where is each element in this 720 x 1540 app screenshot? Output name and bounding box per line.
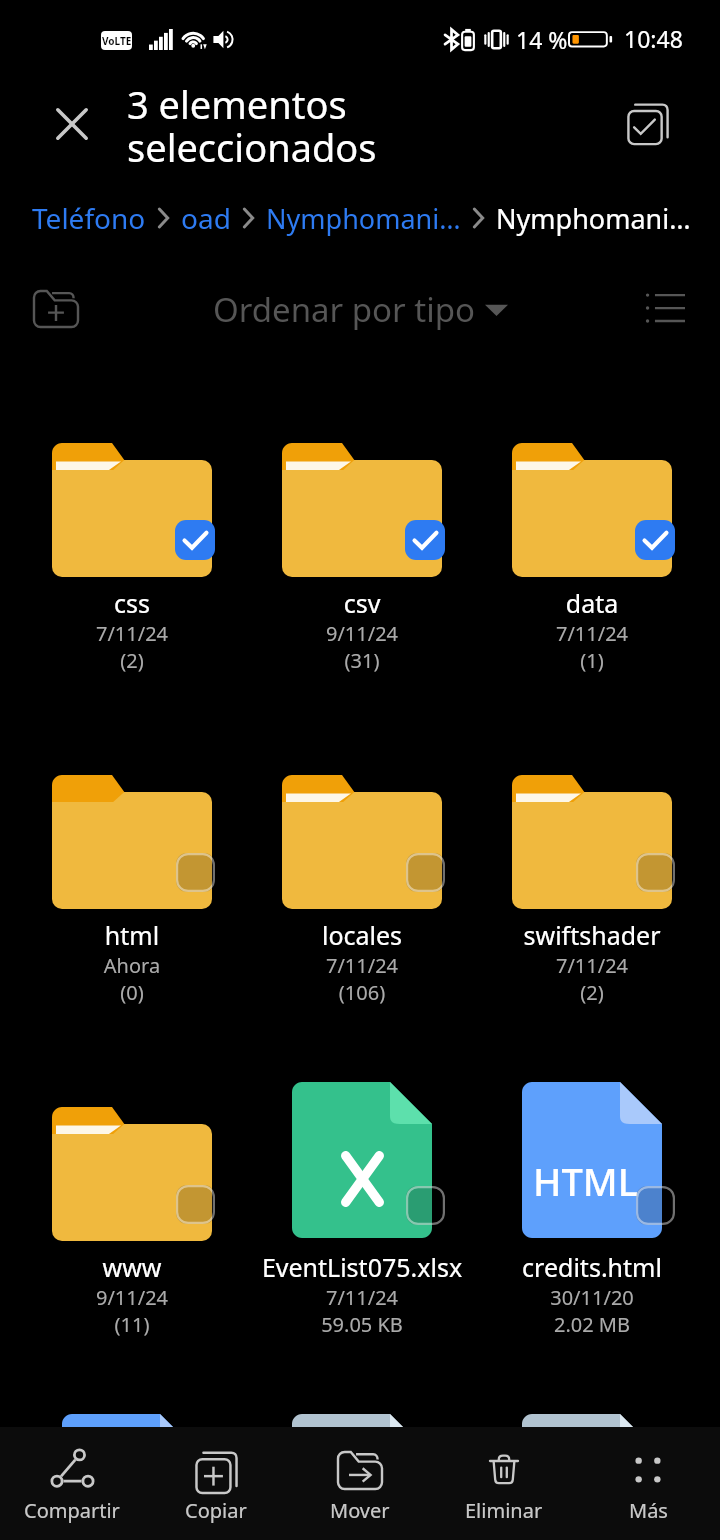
staticText: HTML — [533, 1155, 638, 1207]
button[interactable]: HTML — [477, 1085, 707, 1338]
button[interactable]: Nymphomani… — [266, 200, 461, 237]
button[interactable]: csv — [247, 421, 477, 674]
staticText: (2) — [17, 647, 247, 674]
staticText: Ordenar por tipo — [213, 287, 475, 332]
staticText: (0) — [17, 979, 247, 1006]
staticText: 7/11/24 — [247, 1284, 477, 1311]
staticText: locales — [247, 918, 477, 952]
staticText: (2) — [477, 979, 707, 1006]
staticText: (31) — [247, 647, 477, 674]
button[interactable]: css — [17, 421, 247, 674]
button[interactable]: Copiar — [144, 1427, 288, 1540]
staticText: Compartir — [24, 1497, 120, 1524]
staticText: Mover — [330, 1497, 390, 1524]
button[interactable]: Compartir — [0, 1427, 144, 1540]
staticText: (106) — [247, 979, 477, 1006]
button[interactable]: oad — [181, 199, 231, 237]
staticText: csv — [247, 586, 477, 620]
staticText: Más — [629, 1497, 668, 1524]
staticText: 9/11/24 — [17, 1284, 247, 1311]
staticText: credits.html — [477, 1250, 707, 1284]
staticText: Nymphomani… — [496, 200, 691, 237]
button[interactable]: Mover — [288, 1427, 432, 1540]
button[interactable]: Seleccionar todo — [612, 88, 684, 160]
staticText: css — [17, 586, 247, 620]
staticText: seleccionados — [127, 121, 377, 173]
staticText: 59.05 KB — [247, 1311, 477, 1338]
staticText: data — [477, 586, 707, 620]
staticText: Eliminar — [465, 1497, 543, 1524]
button[interactable]: EventList075.xlsx — [247, 1085, 477, 1338]
staticText: 7/11/24 — [477, 620, 707, 647]
staticText: html — [17, 918, 247, 952]
staticText: 30/11/20 — [477, 1284, 707, 1311]
staticText: (11) — [17, 1311, 247, 1338]
staticText: EventList075.xlsx — [247, 1250, 477, 1284]
button[interactable]: Cerrar — [36, 88, 108, 160]
staticText: Copiar — [185, 1497, 247, 1524]
button[interactable]: html — [17, 753, 247, 1006]
staticText: Ahora — [17, 952, 247, 979]
staticText: swiftshader — [477, 918, 707, 952]
staticText: 7/11/24 — [477, 952, 707, 979]
button[interactable]: www — [17, 1085, 247, 1338]
staticText: 10:48 — [624, 23, 683, 54]
button[interactable]: locales — [247, 753, 477, 1006]
button[interactable]: data — [477, 421, 707, 674]
button[interactable]: Vista de lista — [632, 274, 698, 340]
button[interactable]: Nueva carpeta — [22, 275, 90, 343]
button[interactable]: Eliminar — [432, 1427, 576, 1540]
staticText: 9/11/24 — [247, 620, 477, 647]
button[interactable]: swiftshader — [477, 753, 707, 1006]
staticText: VoLTE — [102, 34, 132, 48]
staticText: 3 elementos — [127, 78, 347, 130]
staticText: (1) — [477, 647, 707, 674]
button[interactable]: Más — [576, 1427, 720, 1540]
staticText: 7/11/24 — [17, 620, 247, 647]
staticText: 2.02 MB — [477, 1311, 707, 1338]
button[interactable]: Teléfono — [32, 199, 146, 237]
staticText: 14 % — [516, 24, 568, 55]
staticText: 7/11/24 — [247, 952, 477, 979]
staticText: www — [17, 1250, 247, 1284]
button[interactable]: Ordenar por tipo — [209, 283, 512, 336]
